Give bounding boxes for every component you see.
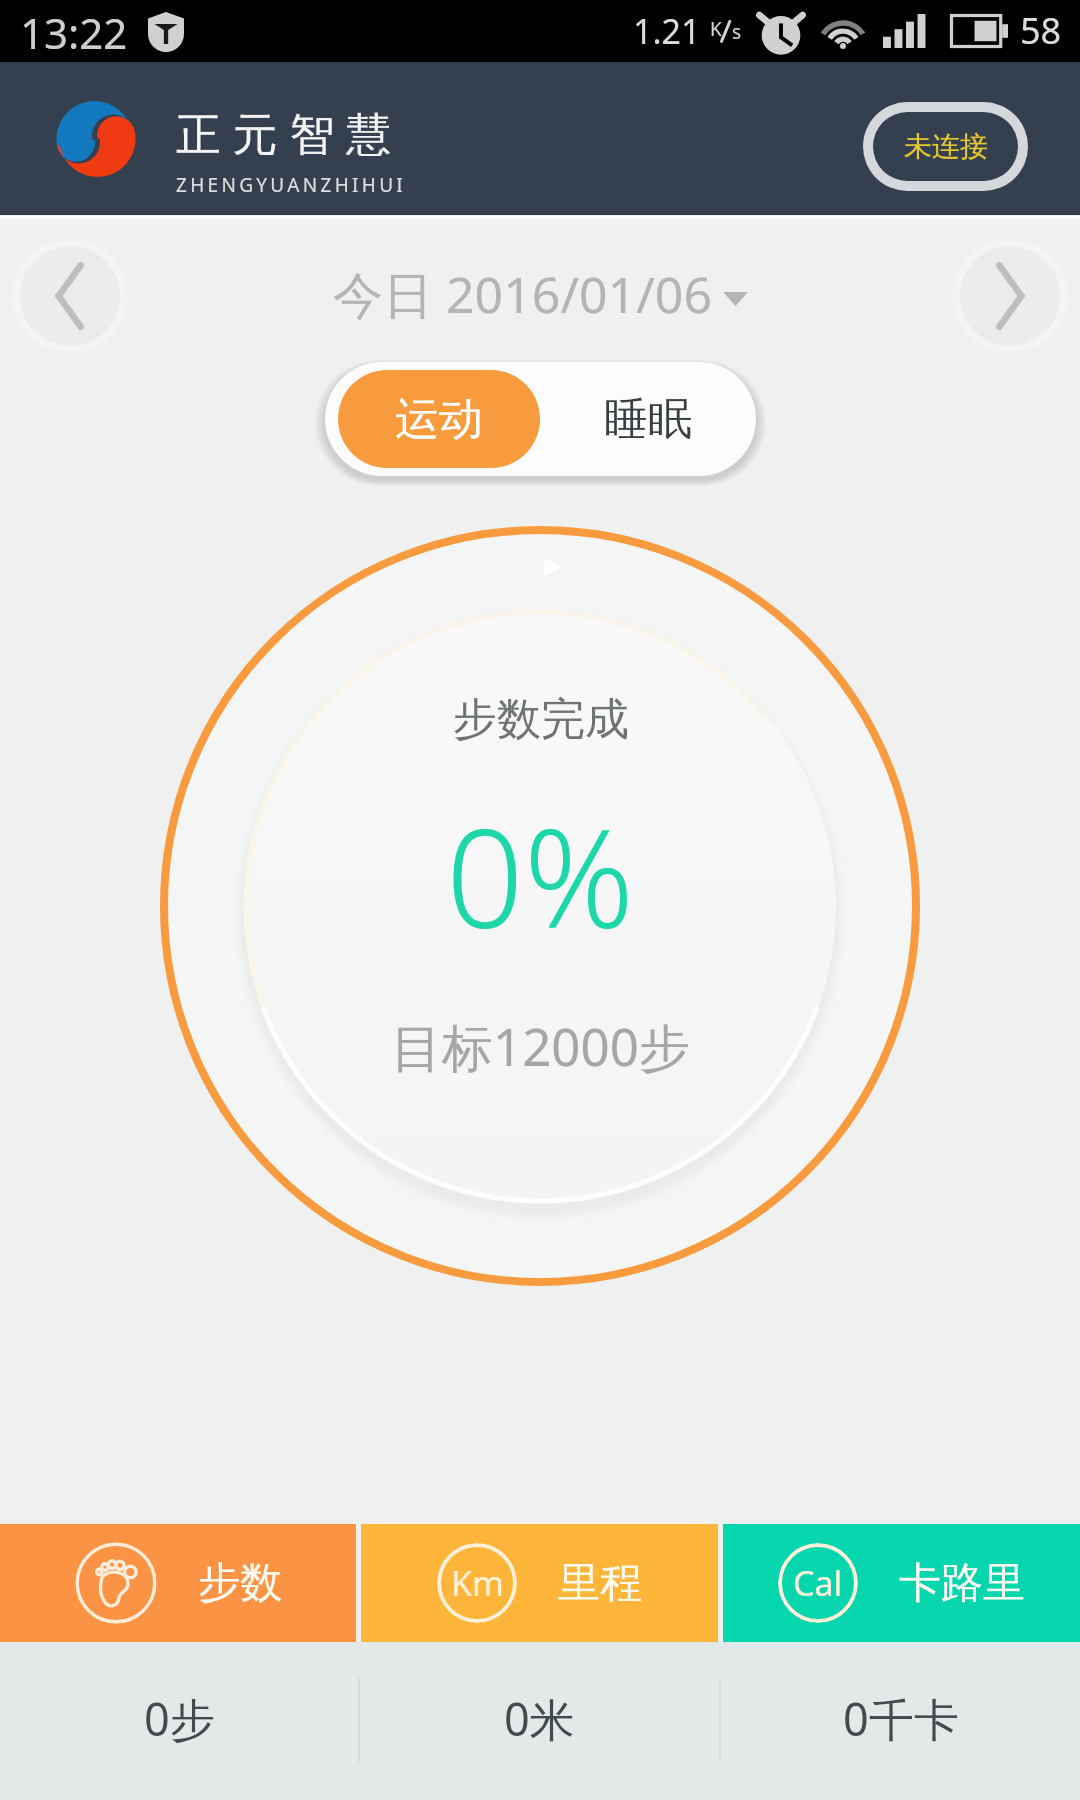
staticText: 运动 xyxy=(395,392,483,447)
staticText: Km xyxy=(451,1560,504,1606)
button[interactable]: Next day xyxy=(953,239,1067,353)
staticText: 0米 xyxy=(504,1688,575,1749)
staticText: 未连接 xyxy=(904,129,988,164)
staticText: Cal xyxy=(793,1560,843,1606)
staticText: 步数 xyxy=(198,1557,282,1610)
staticText: 目标12000步 xyxy=(391,1011,690,1081)
button[interactable]: 睡眠 xyxy=(540,362,756,476)
staticText: 睡眠 xyxy=(604,392,692,447)
button[interactable]: 步数 xyxy=(0,1524,356,1642)
staticText: 卡路里 xyxy=(899,1557,1025,1610)
button[interactable]: Previous day xyxy=(13,239,127,353)
staticText: ZHENGYUANZHIHUI xyxy=(176,172,407,198)
staticText: 正 元 智 慧 xyxy=(176,102,392,163)
staticText: 58 xyxy=(1020,6,1062,55)
staticText: 0% xyxy=(446,783,635,968)
staticText: K xyxy=(710,16,722,42)
staticText: 里程 xyxy=(558,1557,642,1610)
staticText: 步数完成 xyxy=(453,692,629,747)
staticText: 13:22 xyxy=(20,4,128,61)
button[interactable]: 未连接 xyxy=(873,112,1018,181)
button[interactable]: 0千卡 xyxy=(721,1642,1080,1800)
button[interactable]: 0步 xyxy=(0,1642,358,1800)
button[interactable]: 0米 xyxy=(360,1642,719,1800)
staticText: 今日 2016/01/06 xyxy=(333,260,712,328)
staticText: 0千卡 xyxy=(843,1688,959,1749)
staticText: s xyxy=(732,19,742,45)
button[interactable]: 今日 2016/01/06 xyxy=(333,260,748,328)
staticText: 0步 xyxy=(144,1688,215,1749)
button[interactable]: 运动 xyxy=(338,370,540,468)
button[interactable]: Km xyxy=(361,1524,718,1642)
staticText: 1.21 xyxy=(633,8,701,54)
button[interactable]: Cal xyxy=(723,1524,1080,1642)
